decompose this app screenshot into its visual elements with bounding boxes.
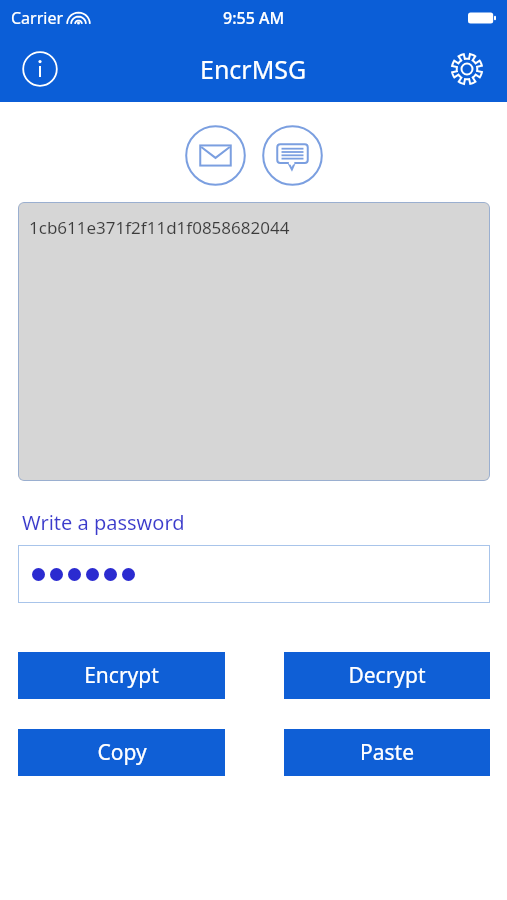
- staticText: Write a password: [22, 509, 185, 536]
- button[interactable]: Paste: [284, 729, 490, 776]
- button[interactable]: Decrypt: [284, 652, 490, 699]
- button[interactable]: 1cb611e371f2f11d1f0858682044: [18, 202, 490, 481]
- staticText: EncrMSG: [200, 52, 307, 86]
- button[interactable]: Info: [18, 47, 62, 91]
- button[interactable]: Message: [262, 125, 323, 186]
- staticText: Copy: [97, 738, 147, 767]
- staticText: Paste: [360, 738, 414, 767]
- staticText: Carrier: [11, 7, 64, 29]
- button[interactable]: Mail: [185, 125, 246, 186]
- staticText: 9:55 AM: [223, 7, 285, 29]
- staticText: Encrypt: [84, 661, 159, 690]
- button[interactable]: Settings: [445, 47, 489, 91]
- staticText: 1cb611e371f2f11d1f0858682044: [29, 216, 290, 239]
- button[interactable]: [18, 545, 490, 603]
- button[interactable]: Encrypt: [18, 652, 225, 699]
- staticText: Decrypt: [348, 661, 426, 690]
- button[interactable]: Copy: [18, 729, 225, 776]
